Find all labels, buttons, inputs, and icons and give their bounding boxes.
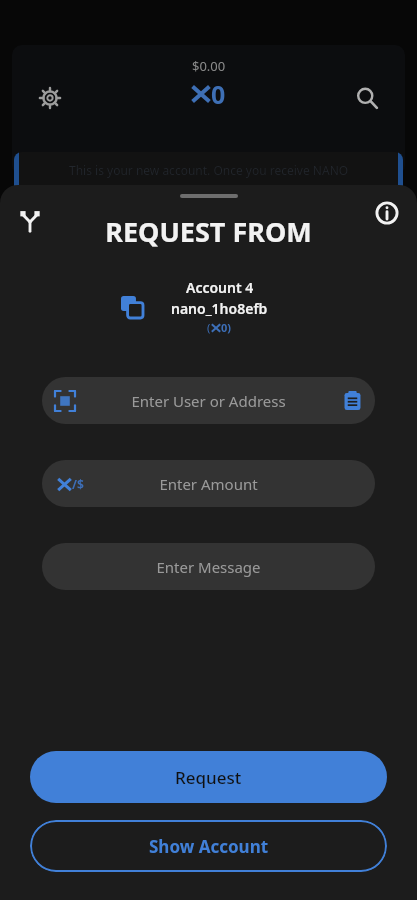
- staticText: Request: [175, 766, 242, 789]
- staticText: /$: [72, 476, 84, 492]
- button[interactable]: Account 4: [0, 278, 417, 335]
- button[interactable]: Information: [367, 193, 407, 233]
- button[interactable]: Enter Message: [42, 543, 375, 590]
- staticText: This is your new account. Once you recei…: [69, 162, 349, 178]
- staticText: nano_1ho8efb: [171, 299, 268, 318]
- staticText: 0): [221, 320, 232, 335]
- staticText: (: [207, 320, 211, 335]
- staticText: Enter User or Address: [88, 391, 329, 411]
- staticText: 0: [211, 77, 226, 111]
- staticText: Show Account: [149, 835, 269, 858]
- staticText: $0.00: [192, 57, 226, 75]
- staticText: Enter Amount: [80, 474, 337, 494]
- button[interactable]: Settings: [30, 78, 70, 118]
- button[interactable]: Request: [30, 751, 387, 803]
- staticText: REQUEST FROM: [105, 213, 312, 250]
- staticText: Account 4: [186, 278, 254, 297]
- button[interactable]: Show Account: [30, 820, 387, 872]
- staticText: Enter Message: [156, 557, 261, 577]
- button[interactable]: Enter User or Address: [42, 377, 375, 424]
- button[interactable]: Switch account: [8, 199, 52, 243]
- button[interactable]: /$: [42, 460, 375, 507]
- button[interactable]: Search: [347, 78, 387, 118]
